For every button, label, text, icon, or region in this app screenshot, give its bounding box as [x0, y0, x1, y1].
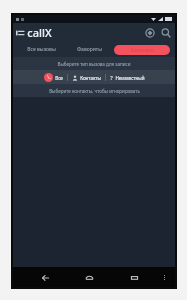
button[interactable]: Фавориты [65, 42, 114, 57]
button[interactable]: Недавние приложения [112, 267, 157, 287]
button[interactable]: Все вызовы [17, 42, 65, 57]
button[interactable]: Меню [16, 29, 24, 37]
staticText: Все вызовы [27, 46, 56, 53]
button[interactable]: Все [44, 73, 63, 82]
staticText: Выберите контакты, чтобы игнорировать [49, 88, 140, 94]
staticText: Контакты [80, 75, 101, 81]
button[interactable]: Записано [114, 45, 170, 55]
staticText: Все [55, 75, 63, 81]
staticText: Неизвестный [115, 75, 145, 81]
staticText: Выберите тип вызова для записи [57, 61, 131, 67]
button[interactable]: Ещё [157, 267, 171, 287]
staticText: Фавориты [77, 46, 102, 53]
button[interactable]: Фильтр [145, 28, 155, 38]
button[interactable]: Назад [23, 267, 67, 287]
staticText: callX [27, 25, 52, 40]
button[interactable]: ? [110, 74, 145, 82]
staticText: Записано [130, 47, 154, 54]
button[interactable]: Контакты [72, 75, 101, 81]
button[interactable]: Поиск [161, 28, 171, 38]
staticText: ? [110, 74, 113, 82]
button[interactable]: Главный экран [67, 267, 112, 287]
